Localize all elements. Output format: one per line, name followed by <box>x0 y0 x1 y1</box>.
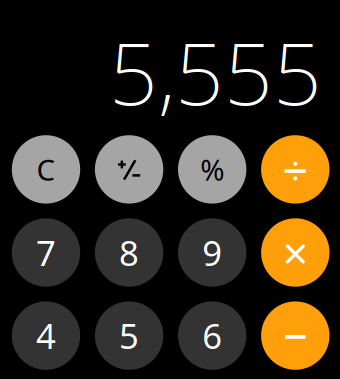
staticText: 6 <box>202 313 222 359</box>
button[interactable]: 4 <box>12 301 80 370</box>
button[interactable]: 5 <box>95 301 163 370</box>
staticText: 4 <box>36 313 56 359</box>
staticText: C <box>36 150 55 189</box>
staticText: 9 <box>202 229 222 275</box>
button[interactable]: Percent <box>178 135 246 204</box>
staticText: 8 <box>119 229 139 275</box>
button[interactable]: 8 <box>95 218 163 287</box>
staticText: 5 <box>119 313 139 359</box>
button[interactable]: Plus minus <box>95 135 163 204</box>
staticText: 5,555 <box>109 15 322 129</box>
button[interactable]: Divide <box>261 135 329 204</box>
staticText: 7 <box>36 229 56 275</box>
button[interactable]: Clear <box>12 135 80 204</box>
button[interactable]: 9 <box>178 218 246 287</box>
button[interactable]: 7 <box>12 218 80 287</box>
button[interactable]: 6 <box>178 301 246 370</box>
staticText: % <box>200 150 224 189</box>
button[interactable]: Minus <box>261 301 329 370</box>
button[interactable]: Multiply <box>261 218 329 287</box>
